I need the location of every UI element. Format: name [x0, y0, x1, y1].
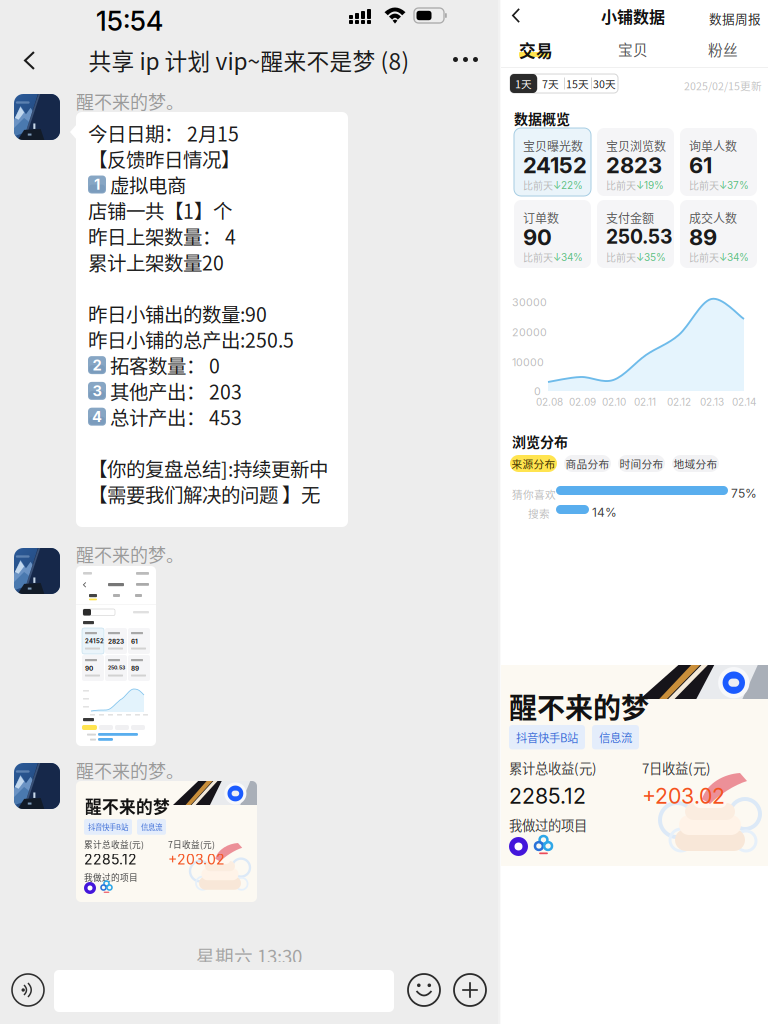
staticText: 小铺数据 — [601, 4, 665, 28]
staticText: 2823 — [108, 637, 124, 645]
button[interactable]: 宝贝曝光数 — [514, 128, 591, 196]
staticText: 其他产出： 203 — [110, 377, 242, 405]
staticText: 醒不来的梦。 — [76, 88, 184, 114]
staticText: ↓ — [719, 251, 727, 263]
staticText: 34% — [561, 251, 583, 263]
staticText: 抖音快手B站 — [516, 729, 578, 745]
staticText: 22% — [561, 179, 583, 191]
staticText: 交易 — [519, 38, 553, 62]
staticText: 拓客数量： 0 — [110, 351, 220, 379]
staticText: 我做过的项目 — [84, 871, 138, 883]
button[interactable]: More options — [446, 966, 494, 1014]
staticText: 61 — [131, 637, 138, 645]
staticText: 7天 — [542, 76, 559, 91]
staticText: 询单人数 — [689, 137, 737, 154]
staticText: 宝贝浏览数 — [606, 137, 666, 154]
staticText: 250.53 — [108, 664, 125, 671]
staticText: ↓ — [719, 179, 727, 191]
staticText: 02.12 — [667, 396, 691, 408]
staticText: 猜你喜欢 — [512, 486, 556, 502]
staticText: 7日收益(元) — [642, 758, 711, 777]
staticText: 14% — [592, 505, 617, 519]
staticText: 3 — [92, 382, 101, 400]
staticText: 成交人数 — [689, 209, 737, 226]
staticText: 地域分布 — [673, 456, 717, 471]
staticText: 【你的复盘总结]:持续更新中 — [88, 454, 328, 482]
button[interactable]: 订单数 — [514, 200, 591, 268]
staticText: 89 — [689, 224, 717, 251]
staticText: 来源分布 — [511, 456, 555, 471]
staticText: 宝贝 — [618, 38, 648, 60]
staticText: 比前天 — [606, 178, 636, 192]
staticText: 商品分布 — [565, 456, 609, 471]
button[interactable]: 来源分布 — [510, 455, 557, 472]
staticText: 02.08 — [536, 396, 563, 408]
staticText: 90 — [85, 664, 93, 672]
staticText: 10000 — [512, 356, 544, 369]
staticText: 订单数 — [523, 209, 559, 226]
staticText: 19% — [644, 179, 664, 191]
button[interactable]: 地域分布 — [672, 455, 719, 472]
button[interactable]: Back — [4, 36, 58, 84]
staticText: 比前天 — [523, 250, 553, 264]
button[interactable]: 宝贝 — [588, 32, 678, 66]
staticText: 34% — [727, 251, 749, 263]
staticText: 浏览分布 — [512, 431, 568, 451]
button[interactable]: 粉丝 — [678, 32, 768, 66]
staticText: ↓ — [553, 179, 561, 191]
staticText: 抖音快手B站 — [88, 821, 128, 832]
staticText: 醒不来的梦。 — [76, 541, 184, 567]
staticText: 15天 — [566, 76, 589, 91]
button[interactable]: 宝贝浏览数 — [597, 128, 674, 196]
staticText: 2285.12 — [509, 783, 586, 809]
staticText: 2285.12 — [84, 851, 137, 868]
staticText: 90 — [523, 224, 552, 251]
staticText: 0 — [534, 385, 541, 398]
button[interactable]: 交易 — [498, 32, 588, 66]
button[interactable]: 成交人数 — [680, 200, 757, 268]
button[interactable]: 询单人数 — [680, 128, 757, 196]
staticText: 比前天 — [523, 178, 553, 192]
button[interactable]: 1天 — [510, 74, 537, 93]
button[interactable]: 数据周报 — [704, 0, 766, 32]
staticText: 醒不来的梦 — [509, 686, 649, 726]
staticText: 24152 — [85, 637, 104, 645]
staticText: 比前天 — [606, 250, 636, 264]
staticText: 累计总收益(元) — [509, 758, 597, 777]
button[interactable]: Emoji — [400, 966, 448, 1014]
staticText: +203.02 — [168, 851, 225, 868]
staticText: 粉丝 — [708, 38, 738, 60]
staticText: 2 — [92, 356, 101, 374]
staticText: 累计总收益(元) — [84, 838, 144, 850]
button[interactable]: 7天 — [537, 74, 564, 93]
button[interactable]: 支付金额 — [597, 200, 674, 268]
button[interactable]: Back — [500, 0, 536, 32]
button[interactable]: More — [440, 36, 494, 84]
staticText: 30天 — [593, 76, 616, 91]
staticText: 今日日期： 2月15 — [88, 119, 239, 147]
staticText: 1天 — [515, 76, 532, 91]
staticText: 昨日上架数量： 4 — [88, 222, 236, 250]
staticText: 数据概览 — [514, 108, 570, 128]
staticText: 共享 ip 计划 vip~醒来不是梦 (8) — [88, 44, 409, 76]
staticText: 店铺一共【1】个 — [88, 196, 232, 224]
button[interactable]: 15天 — [564, 74, 591, 93]
staticText: 醒不来的梦 — [85, 794, 170, 818]
staticText: 信息流 — [141, 821, 162, 832]
staticText: 20000 — [512, 326, 547, 339]
button[interactable]: Voice message — [4, 966, 52, 1014]
staticText: 7日收益(元) — [168, 838, 215, 850]
staticText: 02.10 — [602, 396, 626, 408]
staticText: 89 — [131, 664, 139, 672]
staticText: 搜索 — [528, 505, 550, 521]
staticText: 累计上架数量20 — [88, 248, 224, 276]
button[interactable]: 30天 — [591, 74, 618, 93]
staticText: 75% — [731, 486, 757, 500]
staticText: 总计产出： 453 — [110, 403, 242, 431]
staticText: 1 — [94, 176, 100, 193]
staticText: 02.09 — [569, 396, 596, 408]
staticText: 比前天 — [689, 250, 719, 264]
button[interactable]: 商品分布 — [564, 455, 611, 472]
staticText: 支付金额 — [606, 209, 654, 226]
button[interactable]: 时间分布 — [618, 455, 665, 472]
